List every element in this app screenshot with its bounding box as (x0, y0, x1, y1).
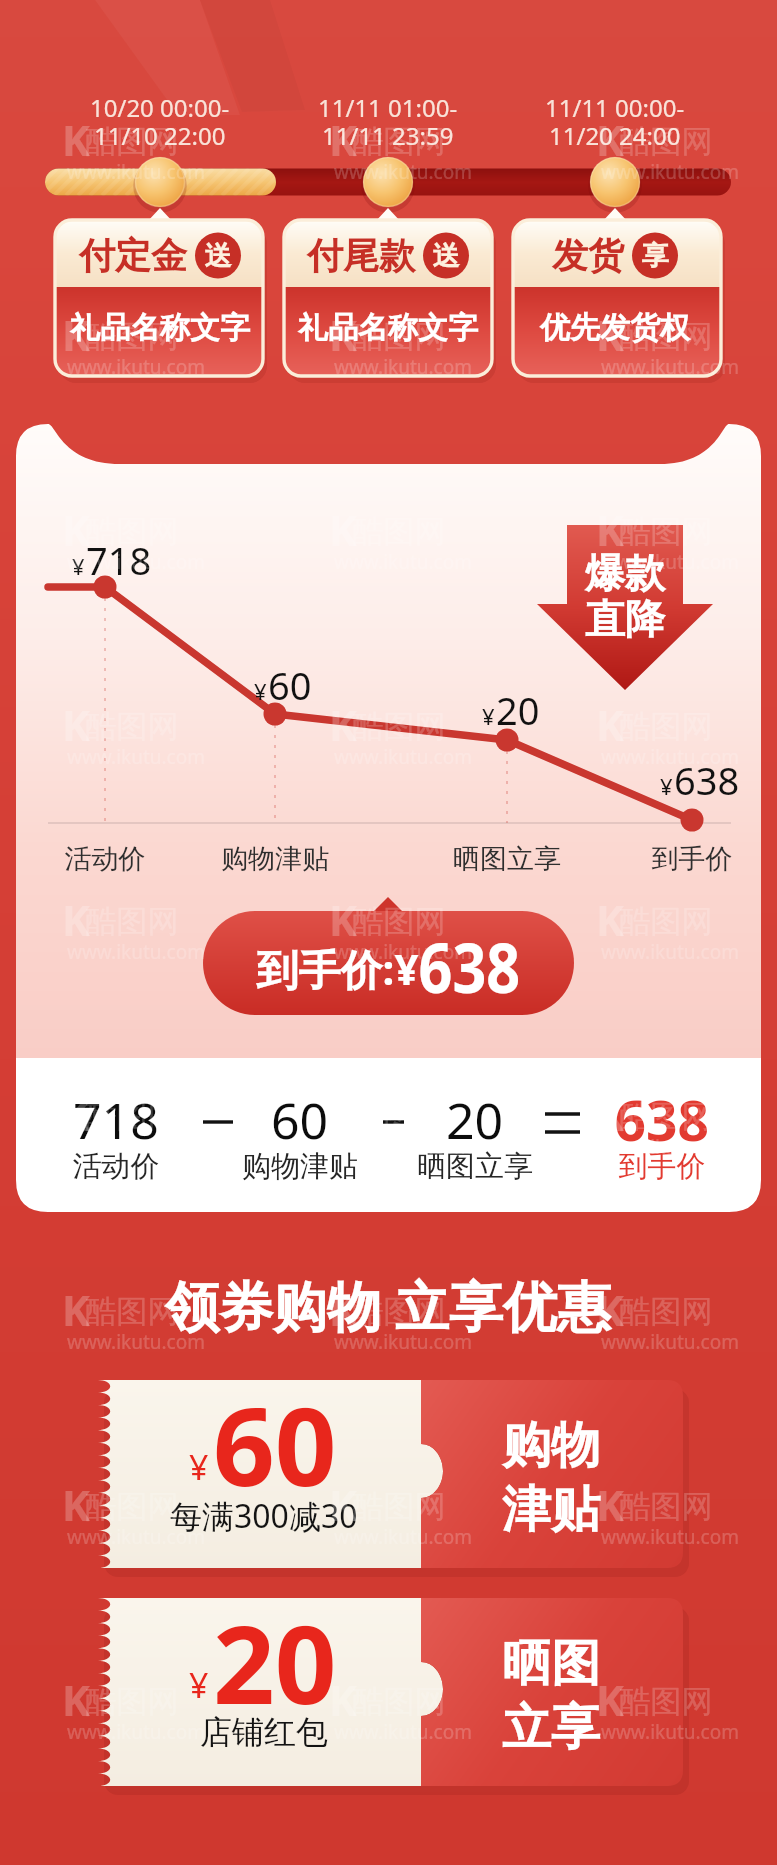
button[interactable]: 20 晒图立享券 (100, 1608, 700, 1776)
button[interactable]: 付定金送礼品 (55, 220, 263, 376)
button[interactable]: 到手价 638 (205, 918, 573, 1012)
button[interactable]: 发货享优先发货权 (513, 220, 721, 376)
button[interactable]: 付尾款送礼品 (284, 220, 492, 376)
button[interactable]: 60 购物津贴券 (100, 1378, 700, 1546)
